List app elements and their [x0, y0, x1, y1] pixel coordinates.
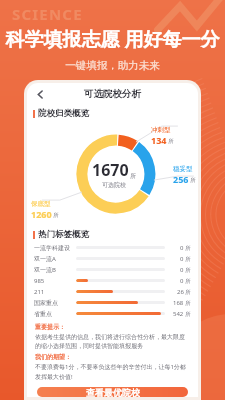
staticText: 可选院校分析 — [84, 88, 141, 100]
button[interactable]: 一流学科建设 — [34, 242, 191, 253]
staticText: 0 — [180, 277, 184, 285]
staticText: 所 — [53, 212, 59, 219]
staticText: 院校归类概览 — [38, 108, 89, 119]
staticText: 0 — [180, 266, 184, 274]
staticText: 一键填报，助力未来 — [0, 59, 225, 72]
staticText: 所 — [190, 177, 196, 184]
staticText: 所 — [185, 311, 191, 318]
button[interactable]: 省重点 — [34, 308, 191, 319]
staticText: 所 — [185, 278, 191, 285]
staticText: 985 — [34, 277, 76, 285]
staticText: 保底型 — [31, 200, 51, 208]
staticText: 0 — [180, 244, 184, 252]
staticText: 重要提示： — [35, 323, 65, 331]
staticText: 双一流B — [34, 266, 76, 274]
staticText: 168 — [173, 299, 184, 307]
button[interactable]: 211 — [34, 286, 191, 297]
staticText: 不要浪费每1分，不要辜负这些年的辛苦付出，让每1分都发挥最大价值! — [35, 363, 190, 381]
staticText: 科学填报志愿 用好每一分 — [0, 26, 225, 52]
staticText: 查看最优院校 — [86, 387, 140, 397]
staticText: 可选院校 — [102, 181, 126, 189]
staticText: 热门标签概览 — [38, 229, 89, 240]
staticText: 所 — [185, 300, 191, 307]
staticText: 26 — [177, 288, 184, 296]
staticText: 1260 — [31, 208, 52, 220]
staticText: 所 — [185, 267, 191, 274]
button[interactable]: 985 — [34, 275, 191, 286]
staticText: 所 — [185, 245, 191, 252]
button[interactable]: Back — [32, 86, 48, 102]
staticText: 冲刺型 — [151, 126, 171, 134]
staticText: 542 — [173, 310, 184, 318]
staticText: 134 — [151, 134, 167, 146]
staticText: 0 — [180, 255, 184, 263]
button[interactable]: 国家重点 — [34, 297, 191, 308]
button[interactable]: 查看最优院校 — [37, 387, 188, 397]
button[interactable]: 双一流B — [34, 264, 191, 275]
staticText: 所 — [185, 289, 191, 296]
button[interactable]: 双一流A — [34, 253, 191, 264]
staticText: 256 — [173, 173, 189, 185]
staticText: 所 — [130, 172, 136, 180]
staticText: 双一流A — [34, 255, 76, 263]
staticText: 依据考生提供的信息，我们将进行综合性分析，最大限度的缩小选择范围，同时提供智能填… — [35, 333, 190, 350]
staticText: 国家重点 — [34, 299, 76, 307]
staticText: 1670 — [92, 159, 129, 181]
staticText: 所 — [185, 256, 191, 263]
staticText: 所 — [168, 138, 174, 145]
staticText: 211 — [34, 288, 76, 296]
staticText: SCIENCE — [12, 4, 83, 24]
staticText: 省重点 — [34, 310, 76, 318]
staticText: 我们的期望： — [35, 353, 71, 361]
staticText: 一流学科建设 — [34, 244, 76, 252]
staticText: 稳妥型 — [173, 165, 193, 173]
